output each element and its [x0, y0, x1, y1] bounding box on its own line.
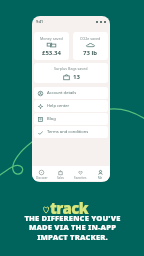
staticText: Terms and conditions: [47, 129, 89, 135]
button[interactable]: Surplus Bags saved: [34, 63, 108, 83]
staticText: 73 lb: [83, 49, 98, 57]
button[interactable]: CO2e saved: [73, 32, 108, 60]
button[interactable]: Account details: [34, 87, 108, 99]
button[interactable]: Me: [90, 168, 110, 180]
staticText: Money saved: [40, 36, 63, 41]
staticText: Help center: [47, 103, 70, 109]
staticText: THE DIFFERENCE YOU'VE MADE VIA THE IN-AP…: [24, 213, 121, 243]
staticText: Discover: [36, 176, 48, 180]
staticText: Favorites: [74, 176, 87, 180]
staticText: track: [50, 198, 88, 218]
button[interactable]: Terms and conditions: [34, 126, 108, 138]
button[interactable]: Sales: [51, 168, 70, 180]
staticText: CO2e saved: [80, 36, 101, 41]
staticText: 9:41: [36, 19, 44, 24]
staticText: Me: [98, 176, 103, 180]
staticText: Surplus Bags saved: [54, 66, 88, 71]
button[interactable]: Money saved: [34, 32, 69, 60]
staticText: Sales: [57, 176, 64, 180]
button[interactable]: Discover: [32, 168, 51, 180]
staticText: Account details: [47, 90, 77, 96]
staticText: Blog: [47, 116, 56, 122]
button[interactable]: Blog: [34, 113, 108, 125]
staticText: £53.34: [42, 49, 61, 57]
staticText: 13: [73, 73, 80, 81]
button[interactable]: Help center: [34, 100, 108, 112]
button[interactable]: Favorites: [70, 168, 90, 180]
